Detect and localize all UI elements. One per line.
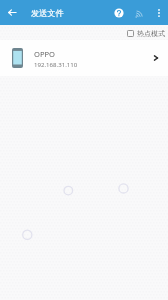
- button[interactable]: Back: [0, 0, 25, 25]
- button[interactable]: Help: [109, 3, 129, 23]
- button[interactable]: 热点模式: [125, 29, 167, 38]
- button[interactable]: OPPO: [0, 40, 168, 76]
- staticText: 192.168.31.110: [34, 60, 78, 68]
- button[interactable]: Connection status: [133, 6, 147, 20]
- staticText: 热点模式: [137, 29, 165, 38]
- staticText: OPPO: [34, 49, 56, 59]
- button[interactable]: More options: [150, 4, 168, 22]
- staticText: 发送文件: [31, 8, 64, 18]
